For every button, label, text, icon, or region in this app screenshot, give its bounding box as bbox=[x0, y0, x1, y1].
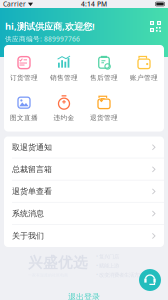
button[interactable]: 退货单查看 bbox=[4, 181, 164, 203]
button[interactable]: 退货管理 bbox=[84, 94, 124, 124]
button[interactable]: 违约金 bbox=[44, 94, 84, 124]
button[interactable]: 图文直播 bbox=[4, 94, 44, 124]
button[interactable]: 关于我们 bbox=[4, 225, 164, 247]
button[interactable]: 客服 bbox=[139, 269, 161, 291]
staticText: 销售管理 bbox=[50, 74, 78, 82]
staticText: 账户管理 bbox=[130, 74, 158, 82]
staticText: 订货管理 bbox=[10, 74, 38, 82]
button[interactable]: 销售管理 bbox=[44, 54, 84, 84]
staticText: 退货单查看 bbox=[12, 186, 52, 196]
button[interactable]: 取退货通知 bbox=[4, 136, 164, 159]
staticText: 4:14 PM bbox=[81, 0, 107, 8]
staticText: • 复兴门店 bbox=[96, 253, 119, 260]
staticText: 退出登录 bbox=[68, 292, 100, 300]
button[interactable]: 系统消息 bbox=[4, 203, 164, 225]
staticText: 取退货通知 bbox=[12, 142, 52, 152]
staticText: 退货管理 bbox=[90, 114, 118, 122]
staticText: 总裁留言箱 bbox=[12, 164, 52, 174]
button[interactable]: 账户管理 bbox=[124, 54, 164, 84]
staticText: 违约金 bbox=[53, 114, 74, 122]
staticText: 供应商编号: 889997766 bbox=[5, 34, 80, 43]
staticText: 兴盛优选 bbox=[28, 254, 88, 272]
staticText: 关于我们 bbox=[12, 231, 44, 241]
button[interactable]: 二维码 bbox=[150, 21, 161, 32]
staticText: • 改变消费者生活方式 bbox=[96, 271, 144, 278]
button[interactable]: 总裁留言箱 bbox=[4, 159, 164, 181]
button[interactable]: 售后管理 bbox=[84, 54, 124, 84]
staticText: 图文直播 bbox=[10, 114, 38, 122]
button[interactable]: 退出登录 bbox=[68, 292, 100, 300]
staticText: hi,测试供应商,欢迎您! bbox=[5, 20, 95, 32]
staticText: • 赋能上游 bbox=[96, 262, 119, 269]
staticText: Carrier bbox=[3, 0, 26, 8]
button[interactable]: 订货管理 bbox=[4, 54, 44, 84]
staticText: 售后管理 bbox=[90, 74, 118, 82]
staticText: 系统消息 bbox=[12, 209, 44, 218]
